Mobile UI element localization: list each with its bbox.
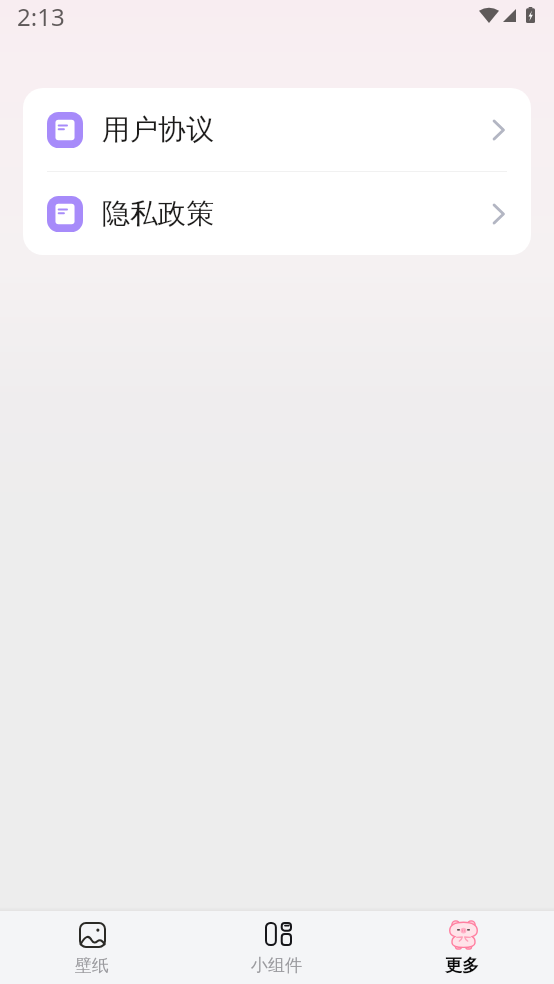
button[interactable]: 小组件 <box>184 911 369 984</box>
staticText: 小组件 <box>251 955 302 976</box>
button[interactable]: 隐私政策 <box>23 172 531 255</box>
other: Open <box>493 205 504 223</box>
staticText: 壁纸 <box>75 955 109 976</box>
button[interactable]: 用户协议 <box>23 88 531 171</box>
other: Open <box>493 121 504 139</box>
button[interactable]: 更多 <box>369 911 554 984</box>
staticText: 2:13 <box>17 0 65 30</box>
staticText: 更多 <box>445 955 479 976</box>
staticText: 用户协议 <box>102 112 214 147</box>
staticText: 隐私政策 <box>102 196 214 231</box>
button[interactable]: 壁纸 <box>0 911 184 984</box>
